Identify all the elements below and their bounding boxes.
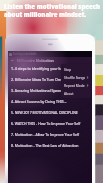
staticText: Listen the motivational speech: [4, 3, 100, 11]
button[interactable]: Shuffle Songs: [61, 73, 91, 81]
staticText: Shuffle Songs: [64, 75, 86, 79]
button[interactable]: Stop: [61, 65, 91, 73]
staticText: 7. Motivation - Allow To Improve Your Se…: [11, 132, 90, 137]
staticText: Stop: [64, 67, 72, 71]
staticText: 1. 4 steps to identifying your blocks: [11, 66, 70, 71]
button[interactable]: Repeat Mode: [61, 81, 91, 89]
staticText: 2. Billionaire Ideas To Turn Dreams Real: [11, 77, 76, 82]
button[interactable]: 6. WATCH THIS - How To Improve Your Self: [8, 118, 92, 129]
staticText: About: [64, 91, 74, 95]
button[interactable]: 2. Billionaire Ideas To Turn Dreams Real: [8, 74, 92, 85]
staticText: Millionaire Motivation: [17, 58, 54, 63]
button[interactable]: 8. Motivation - The Best Law of Attracti…: [8, 140, 92, 151]
staticText: Repeat Mode: [64, 83, 85, 87]
staticText: 5. NEW 2017 MOTIVATIONAL DISCIPLINE: [11, 110, 78, 115]
button[interactable]: 5. NEW 2017 MOTIVATIONAL DISCIPLINE: [8, 107, 92, 118]
staticText: 8. Motivation - The Best Law of Attracti…: [11, 143, 79, 148]
staticText: 4. Attract Success by Doing THIS...: [11, 99, 67, 104]
button[interactable]: 1. 4 steps to identifying your blocks: [8, 63, 92, 74]
staticText: Sorting unavailable: [13, 52, 37, 56]
button[interactable]: 7. Motivation - Allow To Improve Your Se…: [8, 129, 92, 140]
button[interactable]: 4. Attract Success by Doing THIS...: [8, 96, 92, 107]
button[interactable]: About: [61, 89, 91, 97]
button[interactable]: Back: [10, 58, 15, 63]
staticText: 3. Amazing Motivational Speech - NOTHING: [11, 88, 83, 93]
staticText: about millionaire mindset.: [4, 11, 87, 19]
button[interactable]: 3. Amazing Motivational Speech - NOTHING: [8, 85, 92, 96]
staticText: 6. WATCH THIS - How To Improve Your Self: [11, 121, 81, 126]
